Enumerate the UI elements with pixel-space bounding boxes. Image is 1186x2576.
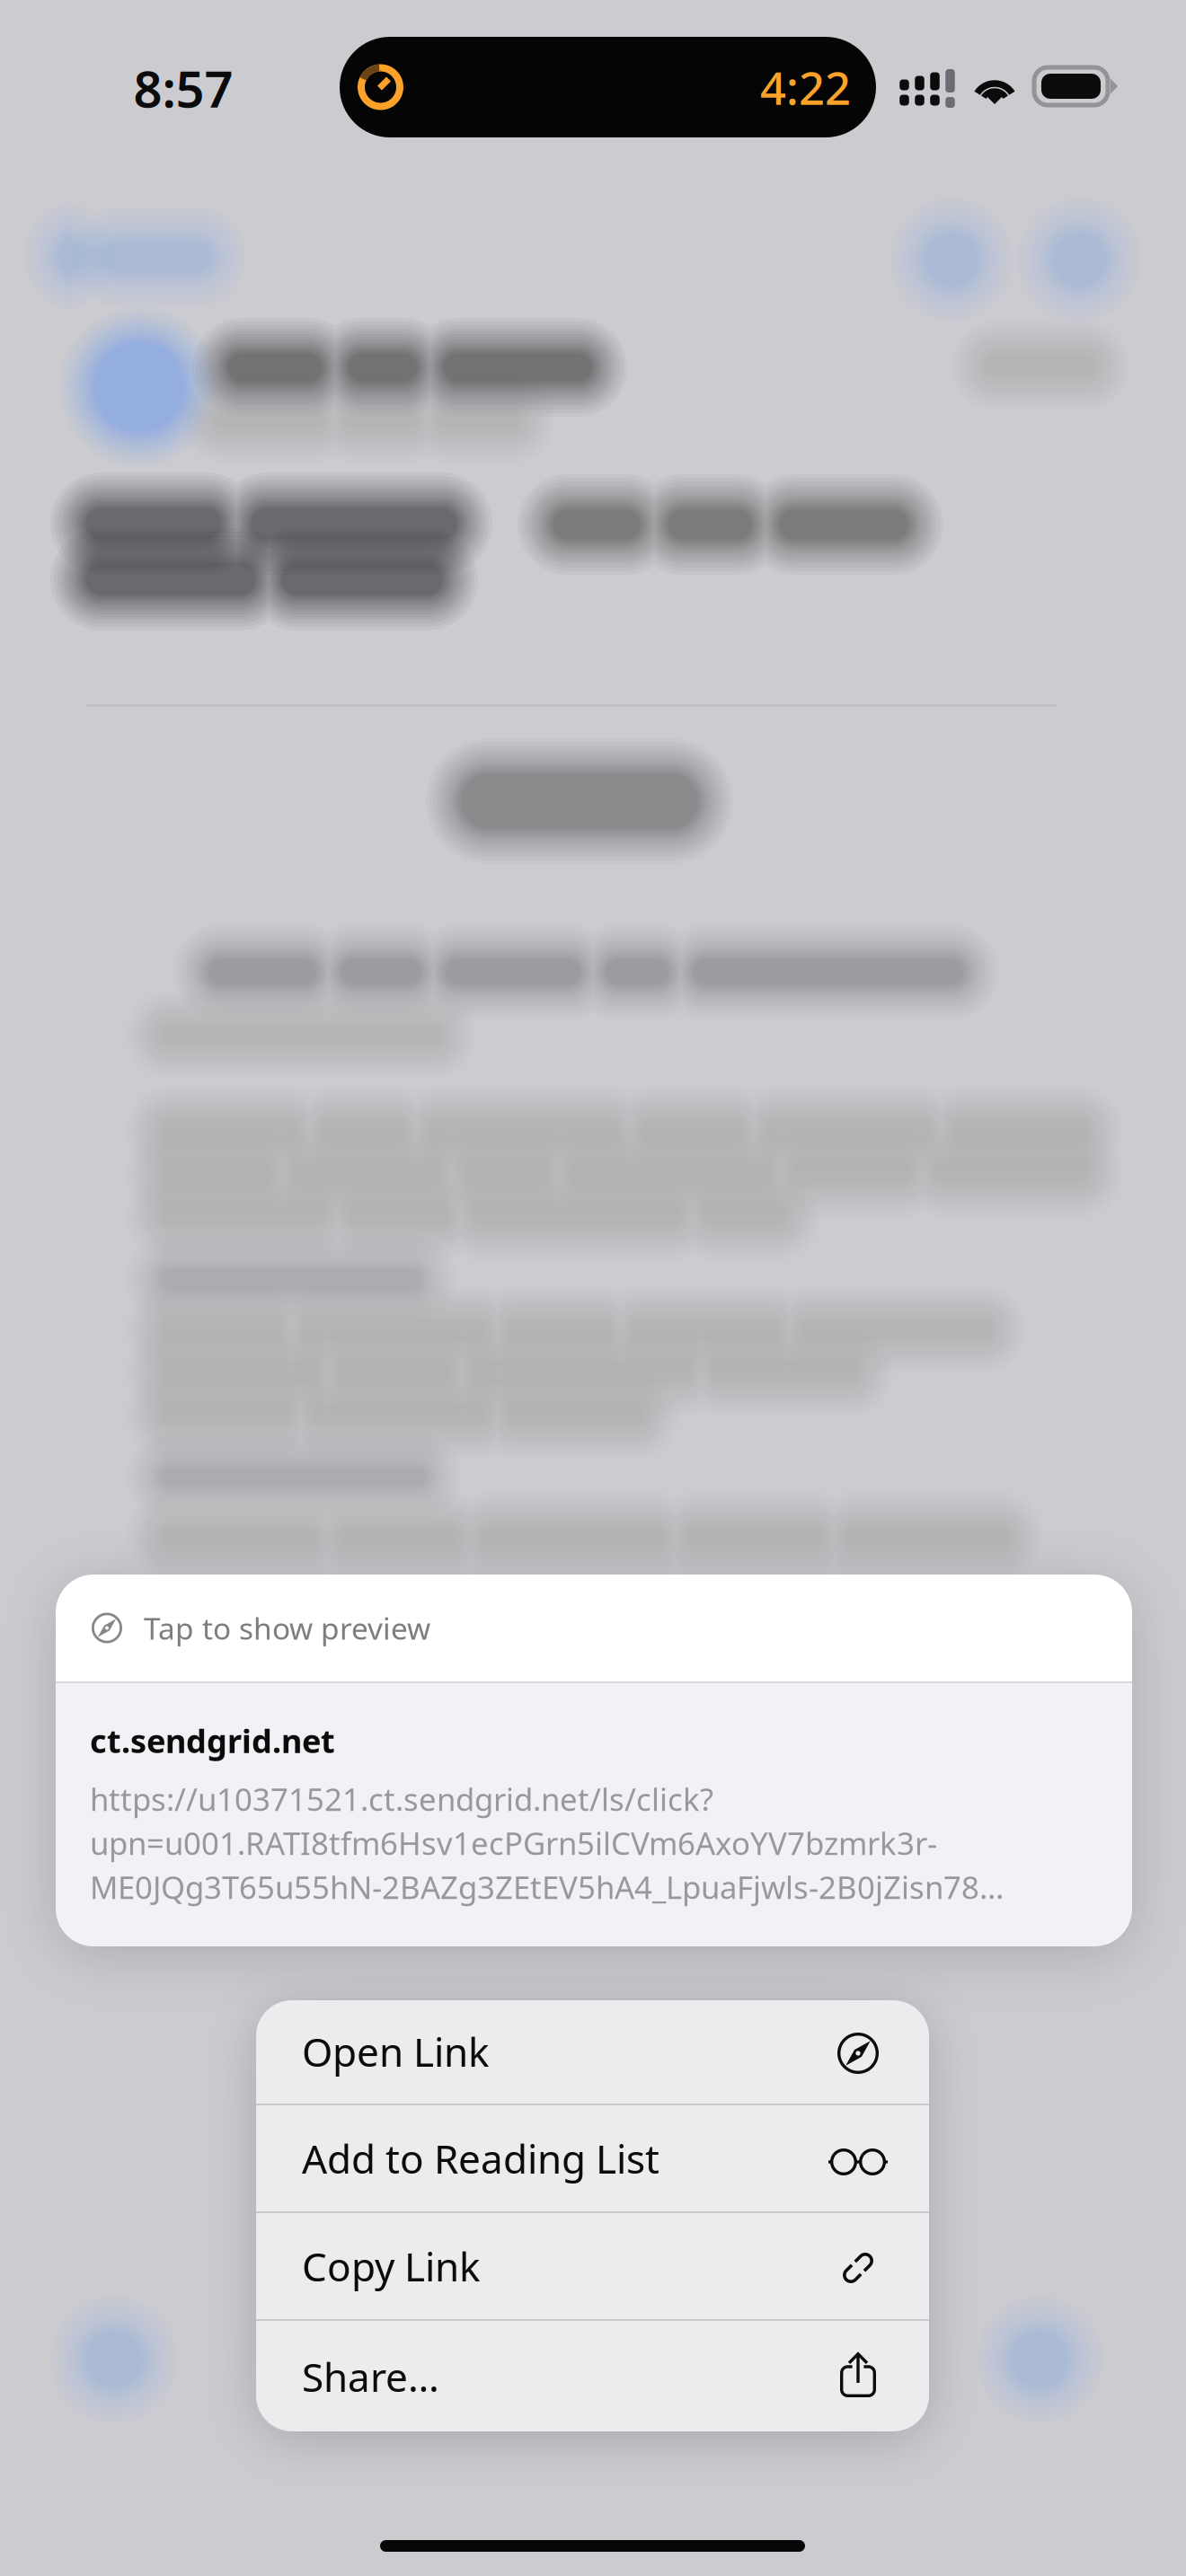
staticText: https://u10371521.ct.sendgrid.net/ls/cli… bbox=[90, 1778, 713, 1820]
staticText: Share… bbox=[302, 2350, 439, 2403]
button[interactable]: Share… bbox=[256, 2321, 929, 2432]
button[interactable]: Open Link bbox=[256, 1999, 929, 2104]
staticText: Tap to show preview bbox=[144, 1608, 430, 1648]
staticText: Copy Link bbox=[302, 2240, 480, 2292]
staticText: Add to Reading List bbox=[302, 2132, 659, 2185]
button[interactable]: Add to Reading List bbox=[256, 2105, 929, 2211]
staticText: ME0JQg3T65u55hN-2BAZg3ZEtEV5hA4_LpuaFjwl… bbox=[90, 1866, 1004, 1908]
staticText: 8:57 bbox=[133, 55, 233, 121]
staticText: ct.sendgrid.net bbox=[90, 1719, 335, 1762]
staticText: 4:22 bbox=[760, 57, 851, 117]
staticText: upn=u001.RATI8tfm6Hsv1ecPGrn5ilCVm6AxoYV… bbox=[90, 1822, 937, 1864]
button[interactable]: Copy Link bbox=[256, 2213, 929, 2319]
button[interactable]: Tap to show preview bbox=[56, 1575, 1132, 1681]
staticText: Open Link bbox=[302, 2025, 489, 2078]
